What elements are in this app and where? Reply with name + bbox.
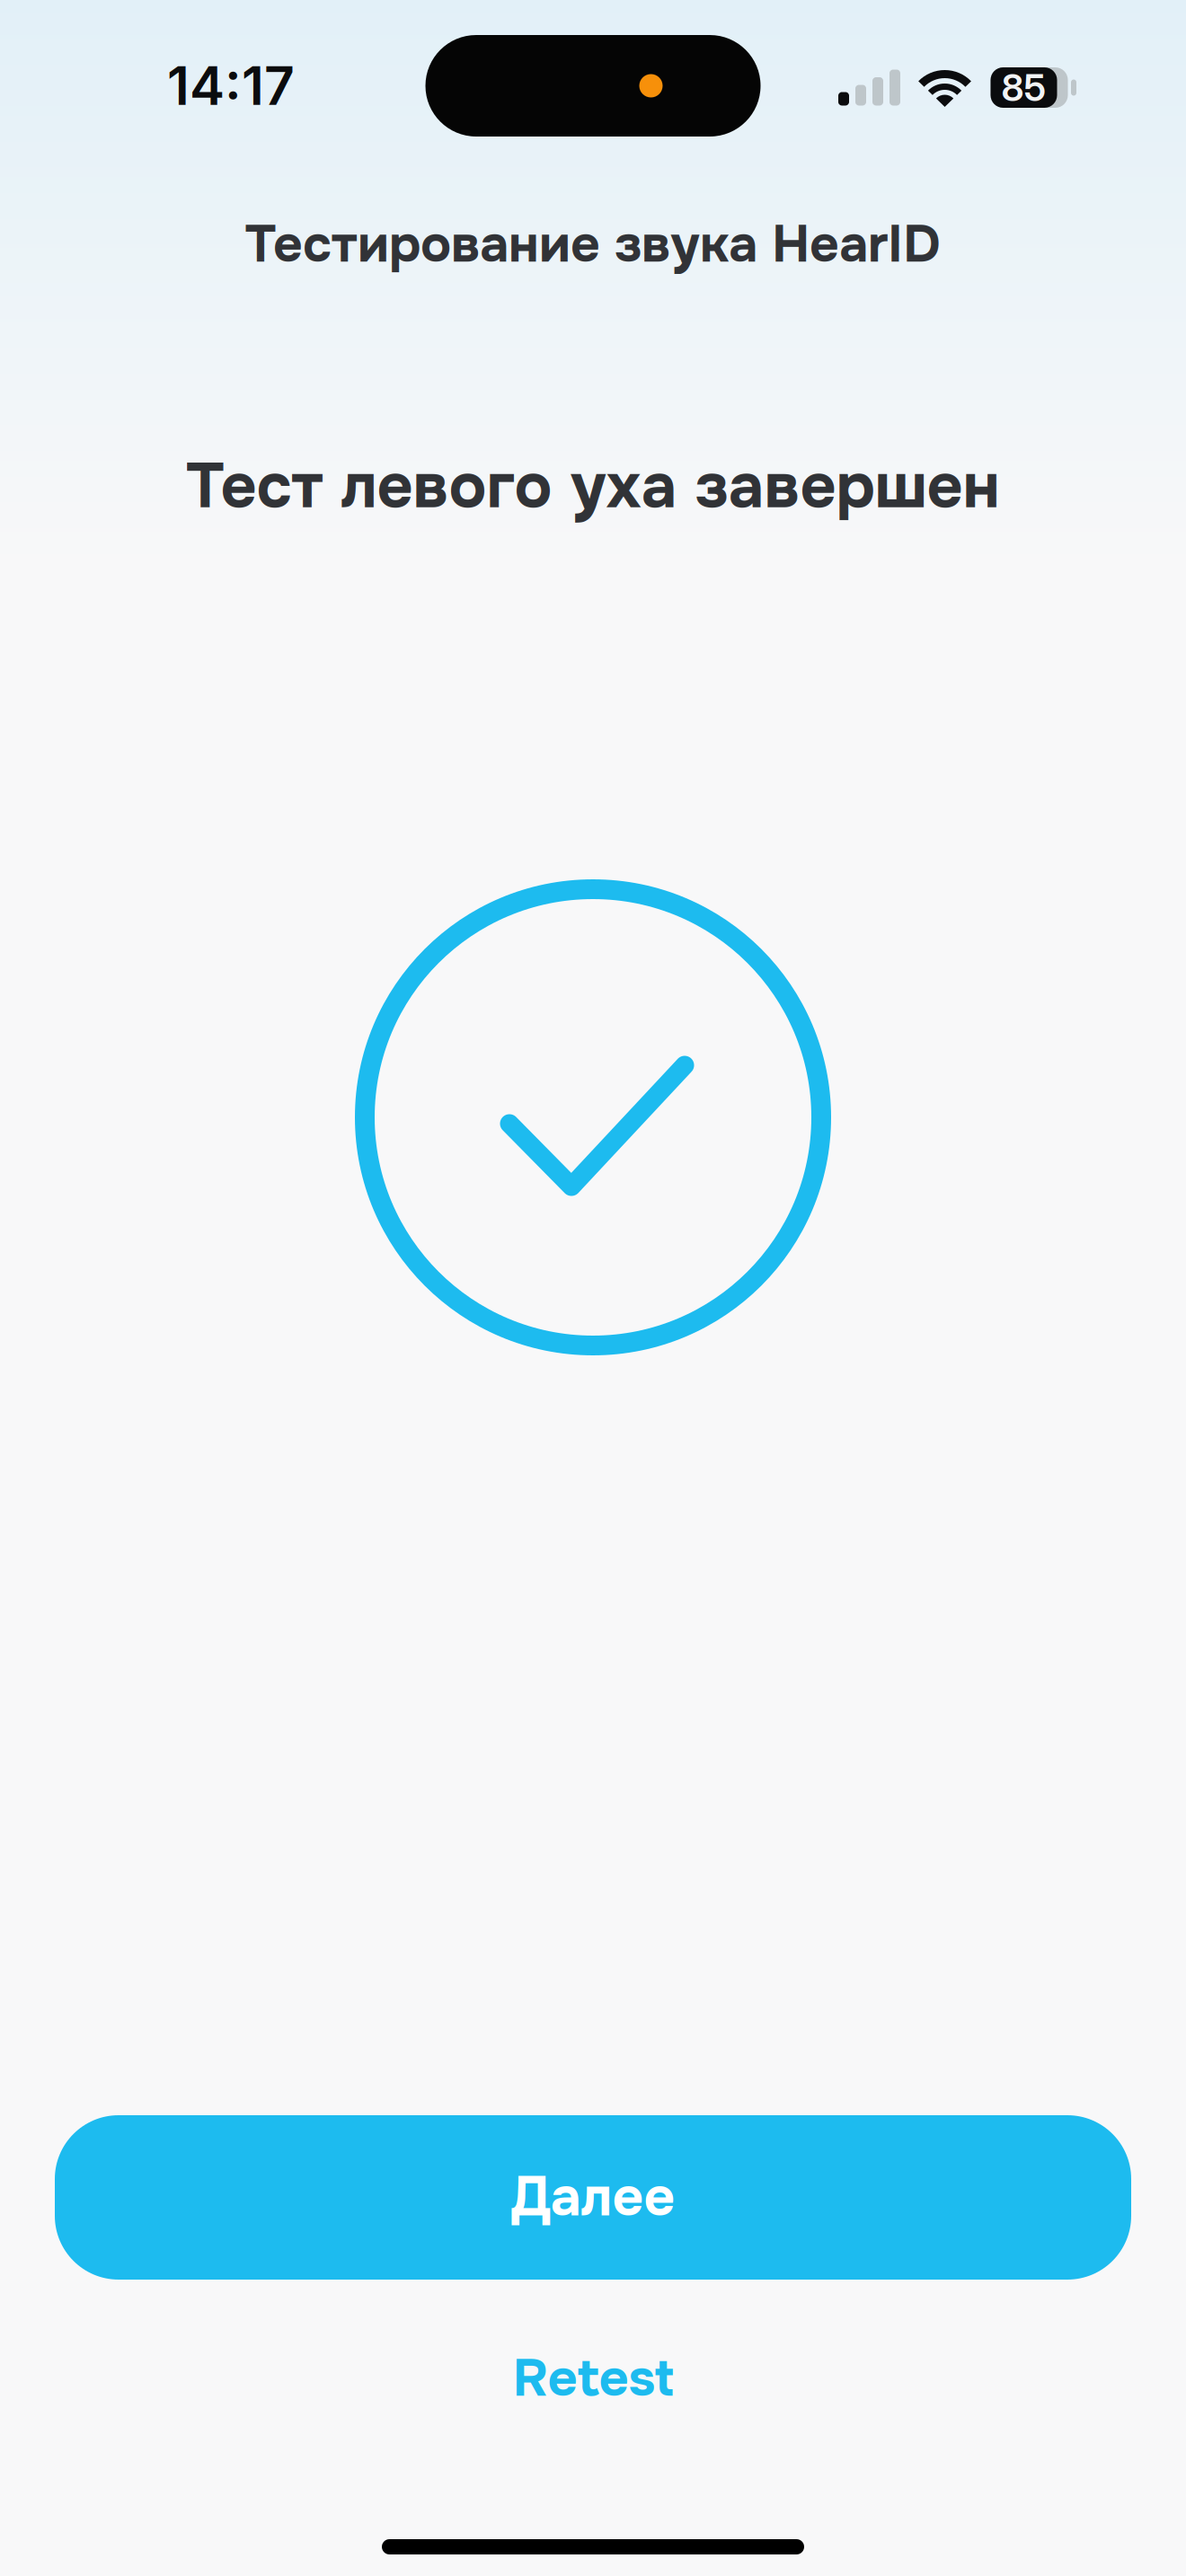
staticText: 14:17 — [167, 54, 295, 118]
staticText: Тест левого уха завершен — [186, 446, 1000, 526]
button[interactable]: Retest — [0, 2325, 1186, 2432]
button[interactable]: Далее — [55, 2115, 1131, 2280]
staticText: Далее — [511, 2163, 675, 2232]
staticText: Тестирование звука HearID — [245, 212, 941, 277]
staticText: 85 — [1001, 65, 1046, 110]
staticText: Retest — [513, 2345, 673, 2412]
